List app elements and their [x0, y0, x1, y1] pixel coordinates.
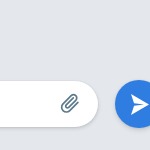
- button[interactable]: Send: [115, 80, 150, 128]
- button[interactable]: Attach file: [59, 92, 83, 116]
- button[interactable]: [0, 81, 98, 127]
